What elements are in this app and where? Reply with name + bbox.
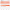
button[interactable]: Chili Crisp Noodles xyxy=(0,0,10,10)
